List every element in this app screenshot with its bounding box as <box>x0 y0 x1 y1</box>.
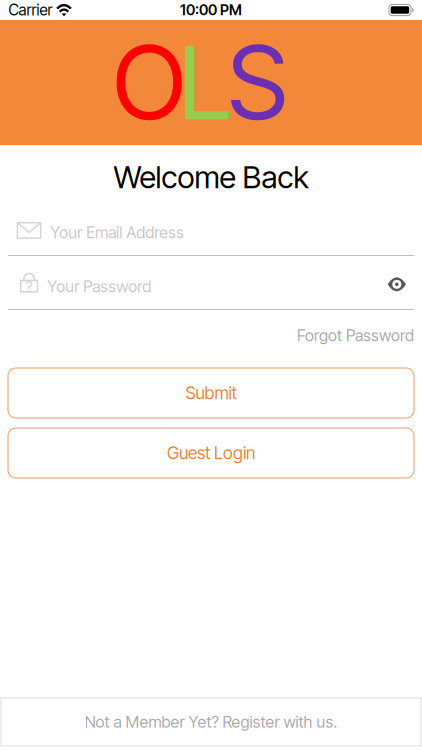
staticText: S <box>227 21 287 144</box>
staticText: Submit <box>185 382 236 403</box>
button[interactable]: Show password <box>384 271 414 293</box>
staticText: 10:00 PM <box>180 1 242 19</box>
staticText: ? <box>26 278 33 296</box>
staticText: Your Password <box>47 277 151 296</box>
button[interactable]: Submit <box>8 368 414 418</box>
staticText: Forgot Password <box>297 326 414 345</box>
staticText: Guest Login <box>167 442 255 463</box>
staticText: Welcome Back <box>113 158 308 195</box>
staticText: Carrier <box>8 1 52 19</box>
staticText: Your Email Address <box>50 223 184 242</box>
button[interactable]: Guest Login <box>8 428 414 478</box>
staticText: L <box>179 21 231 144</box>
button[interactable]: Forgot Password <box>297 310 414 345</box>
staticText: Not a Member Yet? Register with us. <box>84 712 337 732</box>
staticText: O <box>113 21 185 144</box>
button[interactable]: Not a Member Yet? Register with us. <box>1 698 421 746</box>
